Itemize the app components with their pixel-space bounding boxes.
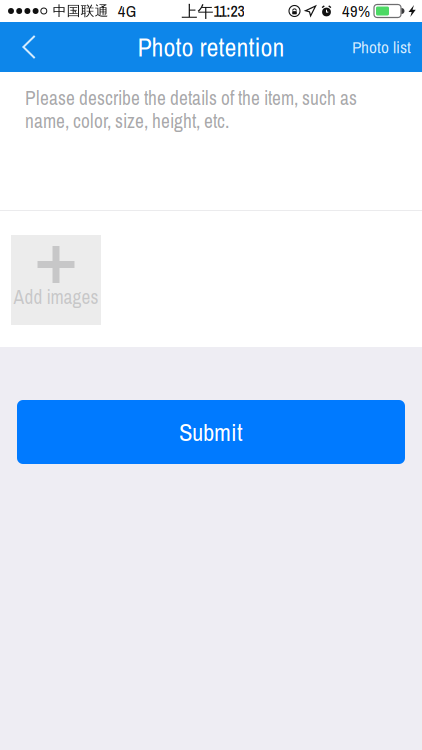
staticText: Photo retention (137, 29, 284, 64)
button[interactable]: Back (0, 22, 52, 72)
staticText: Photo list (352, 35, 411, 59)
staticText: 4G (118, 0, 137, 22)
staticText: name, color, size, height, etc. (25, 108, 229, 134)
staticText: Please describe the details of the item,… (25, 85, 357, 111)
staticText: Add images (13, 284, 98, 310)
button[interactable]: Submit (17, 400, 405, 464)
staticText: 中国联通 (53, 2, 109, 19)
staticText: 49% (342, 0, 370, 22)
button[interactable]: Photo list (338, 22, 422, 72)
button[interactable]: Add images (11, 235, 101, 325)
staticText: 上午11:23 (181, 0, 244, 22)
staticText: Submit (179, 415, 243, 449)
